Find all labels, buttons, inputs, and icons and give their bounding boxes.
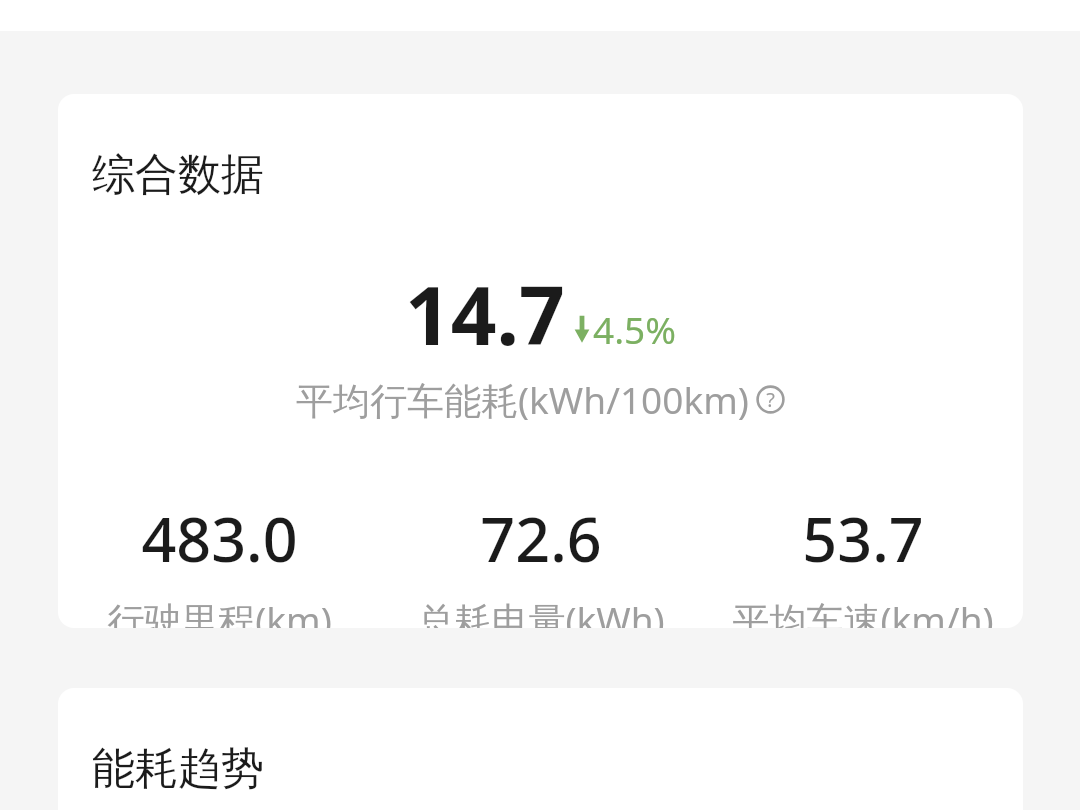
staticText: 综合数据 [92,148,264,202]
button[interactable]: Help about average energy consumption [756,385,785,414]
staticText: 行驶里程(km) [107,594,332,628]
staticText: 能耗趋势 [92,742,264,796]
staticText: 4.5% [593,304,676,354]
button[interactable]: 能耗趋势 [58,688,1023,810]
button[interactable]: 53.7 [702,497,1023,628]
staticText: 平均车速(km/h) [732,594,994,628]
staticText: 53.7 [802,497,924,580]
staticText: 72.6 [480,497,602,580]
staticText: 14.7 [405,259,565,368]
staticText: 483.0 [141,497,298,580]
staticText: 平均行车能耗(kWh/100km) [296,374,749,425]
button[interactable]: 综合数据 [58,94,1023,628]
staticText: ? [766,386,775,413]
staticText: 总耗电量(kWh) [417,594,665,628]
button[interactable]: 483.0 [58,497,380,628]
button[interactable]: 72.6 [380,497,702,628]
